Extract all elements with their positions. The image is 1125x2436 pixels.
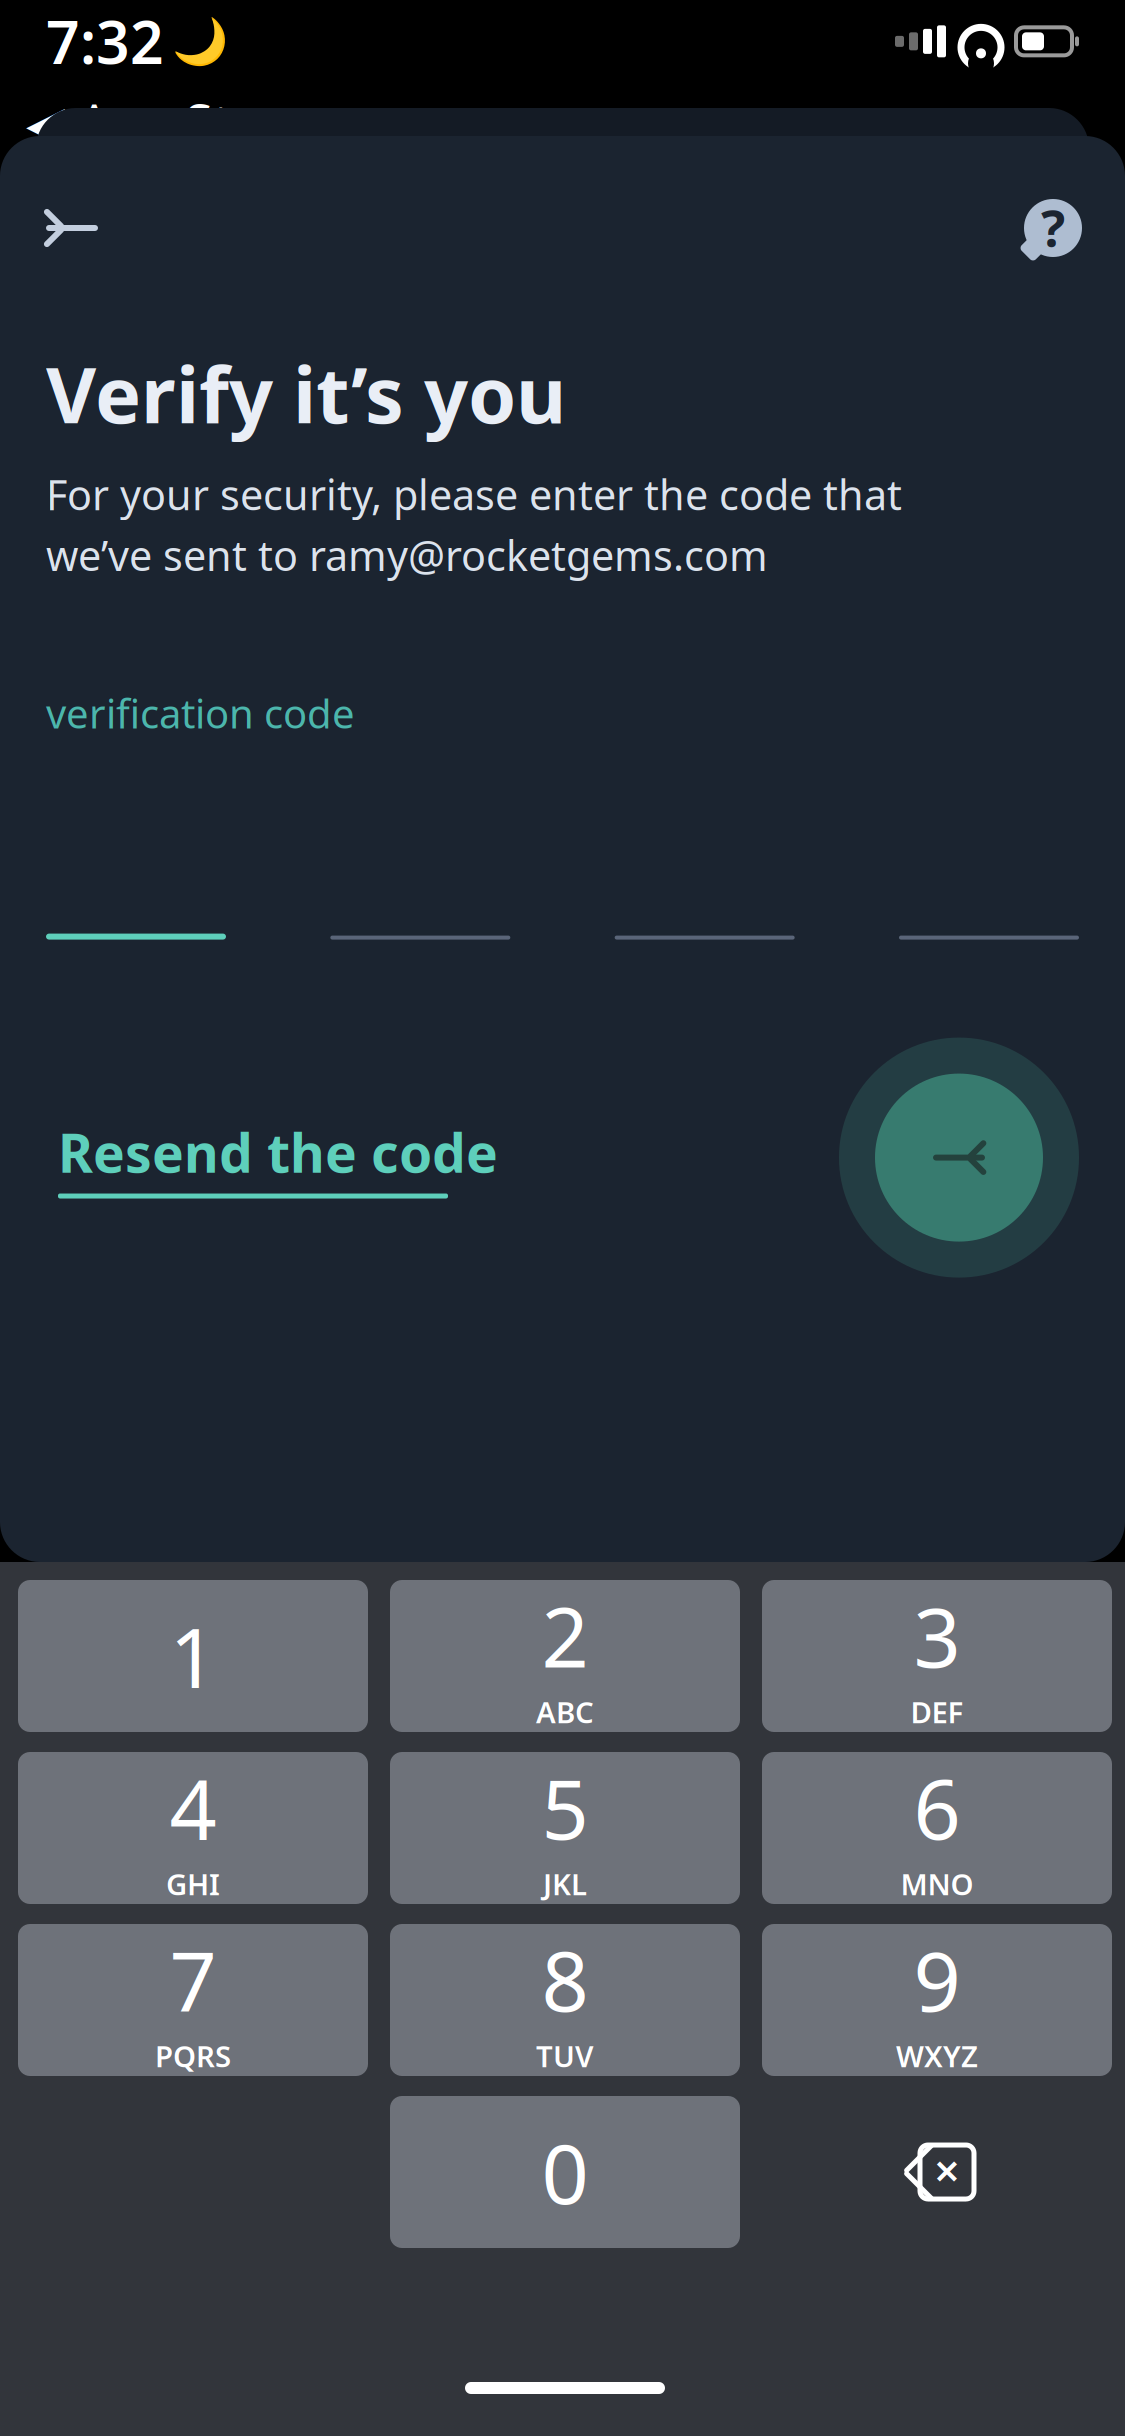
staticText: 6 — [913, 1753, 960, 1862]
staticText: GHI — [166, 1864, 220, 1903]
staticText: × — [934, 2140, 960, 2200]
staticText: DEF — [910, 1692, 963, 1731]
staticText: For your security, please enter the code… — [46, 467, 902, 522]
button[interactable]: Help — [1005, 180, 1101, 276]
staticText: Verify it’s you — [46, 342, 566, 445]
staticText: ◀ App Store — [26, 88, 311, 156]
button[interactable]: 3 — [762, 1580, 1112, 1732]
button[interactable]: 7 — [18, 1924, 368, 2076]
button[interactable]: Back — [24, 180, 120, 276]
staticText: WXYZ — [896, 2036, 978, 2075]
staticText: TUV — [536, 2036, 594, 2075]
staticText: MNO — [900, 1864, 973, 1903]
staticText: 1 — [169, 1601, 216, 1711]
staticText: JKL — [543, 1864, 587, 1903]
staticText: 0 — [541, 2117, 588, 2227]
staticText: 2 — [541, 1581, 588, 1690]
button[interactable]: 2 — [390, 1580, 740, 1732]
button[interactable]: Delete — [762, 2096, 1112, 2248]
staticText: 9 — [913, 1925, 960, 2034]
button[interactable]: Continue — [839, 1038, 1079, 1278]
staticText: 8 — [541, 1925, 588, 2034]
button[interactable]: 6 — [762, 1752, 1112, 1904]
staticText: Resend the code — [58, 1117, 498, 1187]
button[interactable]: 8 — [390, 1924, 740, 2076]
staticText: verification code — [46, 686, 355, 740]
staticText: 4 — [169, 1753, 216, 1862]
staticText: 🌙 — [172, 15, 228, 67]
staticText: ? — [1041, 193, 1065, 261]
button[interactable]: 1 — [18, 1580, 368, 1732]
staticText: 7 — [169, 1925, 216, 2034]
button[interactable]: 9 — [762, 1924, 1112, 2076]
button[interactable]: 4 — [18, 1752, 368, 1904]
staticText: ABC — [536, 1692, 594, 1731]
staticText: 7:32 — [46, 2, 164, 80]
staticText: we’ve sent to ramy@rocketgems.com — [46, 528, 768, 582]
button[interactable]: 0 — [390, 2096, 740, 2248]
staticText: PQRS — [155, 2036, 231, 2075]
button[interactable]: Resend the code — [46, 1107, 510, 1208]
staticText: 5 — [541, 1753, 588, 1862]
staticText: 3 — [913, 1581, 960, 1690]
button[interactable]: 5 — [390, 1752, 740, 1904]
